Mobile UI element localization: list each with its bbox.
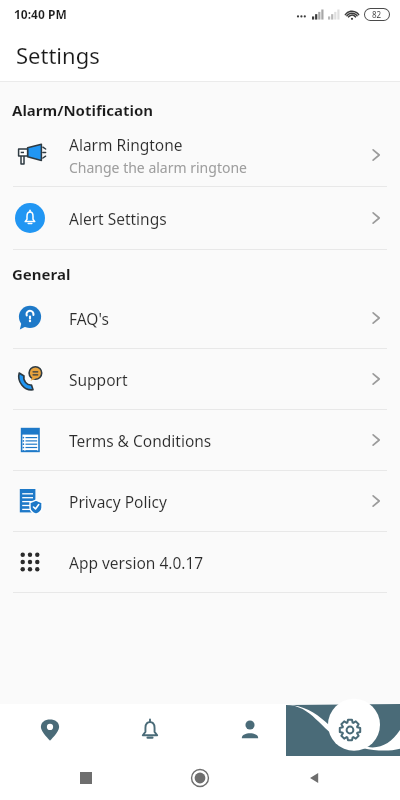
button[interactable]: Back (298, 762, 330, 794)
button[interactable]: Privacy Policy (0, 471, 400, 531)
button[interactable]: Terms & Conditions (0, 410, 400, 470)
staticText: 10:40 PM (14, 6, 67, 22)
staticText: Change the alarm ringtone (69, 158, 247, 177)
staticText: Terms & Conditions (69, 430, 212, 451)
button[interactable]: Home (184, 762, 216, 794)
button[interactable]: App version 4.0.17 (0, 532, 400, 592)
button[interactable]: Alarm Ringtone (0, 124, 400, 186)
button[interactable]: Location (0, 704, 100, 756)
button[interactable]: Notifications (100, 704, 200, 756)
staticText: Privacy Policy (69, 491, 167, 512)
button[interactable]: Alert Settings (0, 187, 400, 249)
button[interactable]: Settings (300, 704, 400, 756)
button[interactable]: Profile (200, 704, 300, 756)
staticText: Alert Settings (69, 208, 167, 229)
staticText: Alarm Ringtone (69, 134, 183, 155)
button[interactable]: Support (0, 349, 400, 409)
staticText: App version 4.0.17 (69, 552, 204, 573)
staticText: Alarm/Notification (12, 100, 154, 120)
button[interactable]: Recents (70, 762, 102, 794)
staticText: 82 (372, 9, 382, 20)
staticText: Settings (16, 40, 100, 70)
staticText: FAQ's (69, 308, 109, 329)
staticText: General (12, 264, 71, 284)
button[interactable]: FAQ's (0, 288, 400, 348)
staticText: Support (69, 369, 128, 390)
